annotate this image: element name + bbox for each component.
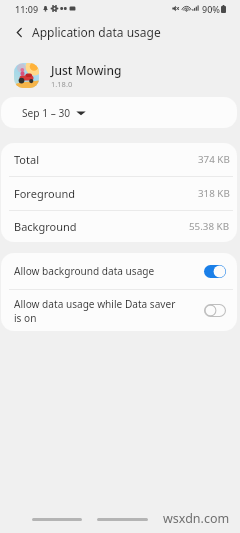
staticText: 90% bbox=[202, 3, 220, 15]
staticText: Background bbox=[14, 219, 77, 234]
button[interactable]: Foreground bbox=[1, 177, 237, 210]
button[interactable]: Allow background data usage bbox=[1, 253, 237, 289]
staticText: wsxdn.com bbox=[163, 510, 230, 527]
staticText: 1.18.0 bbox=[51, 79, 73, 89]
button[interactable]: Back bbox=[9, 22, 29, 42]
staticText: 374 KB bbox=[198, 153, 230, 166]
staticText: Application data usage bbox=[32, 24, 161, 40]
staticText: Total bbox=[14, 152, 39, 167]
staticText: Foreground bbox=[14, 186, 75, 201]
staticText: Just Mowing bbox=[51, 62, 122, 78]
staticText: Sep 1 – 30 bbox=[22, 106, 71, 120]
button[interactable]: Allow data usage while Data saver is on bbox=[1, 290, 237, 331]
button[interactable]: Total bbox=[1, 143, 237, 176]
button[interactable]: Recents bbox=[32, 518, 82, 521]
button[interactable]: Home bbox=[97, 518, 148, 521]
staticText: 11:09 bbox=[15, 3, 39, 15]
staticText: 55.38 KB bbox=[189, 220, 230, 233]
staticText: Allow background data usage bbox=[14, 264, 180, 278]
button[interactable]: Sep 1 – 30 bbox=[1, 97, 237, 128]
staticText: 318 KB bbox=[198, 187, 230, 200]
button[interactable]: Background bbox=[1, 211, 237, 242]
staticText: Allow data usage while Data saver is on bbox=[14, 297, 180, 325]
